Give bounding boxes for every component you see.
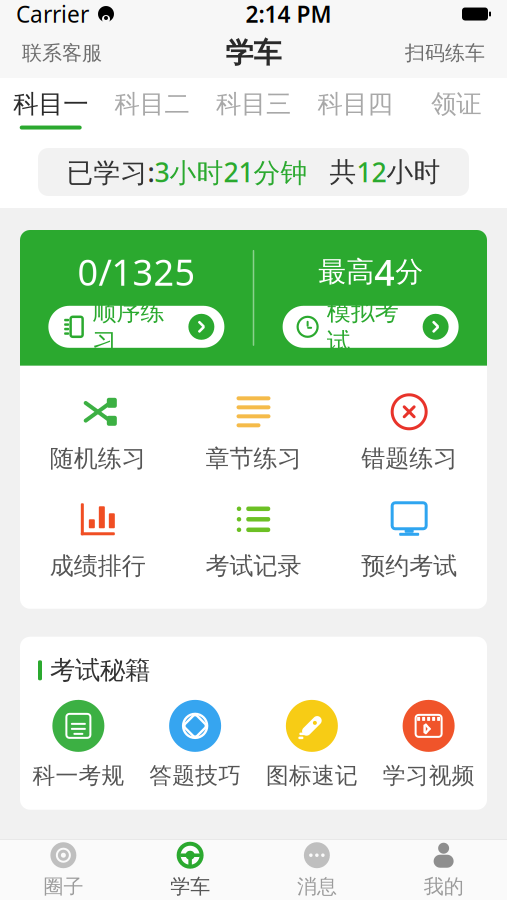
button[interactable]: 答题技巧: [137, 700, 254, 790]
button[interactable]: 考试记录: [176, 495, 331, 585]
button[interactable]: 错题练习: [331, 388, 487, 477]
staticText: 考试记录: [205, 551, 301, 581]
button[interactable]: 预约考试: [331, 495, 487, 585]
staticText: 学习视频: [383, 762, 475, 790]
staticText: 科目一: [13, 88, 88, 119]
button[interactable]: 圈子: [0, 835, 127, 900]
staticText: 成绩排行: [50, 551, 146, 581]
staticText: 学车: [170, 874, 210, 899]
staticText: 科一考规: [32, 762, 124, 790]
button[interactable]: 章节练习: [176, 388, 331, 477]
button[interactable]: 扫码练车: [393, 33, 497, 73]
staticText: 共: [329, 156, 356, 188]
staticText: 模拟考试: [327, 297, 399, 356]
staticText: 已学习:: [66, 154, 154, 190]
staticText: 科目二: [115, 88, 190, 119]
button[interactable]: 领证: [406, 76, 507, 137]
button[interactable]: 成绩排行: [20, 495, 176, 585]
button[interactable]: 顺序练习: [48, 306, 224, 348]
staticText: 章节练习: [205, 444, 301, 473]
staticText: 科目三: [216, 88, 291, 119]
button[interactable]: 消息: [253, 835, 380, 900]
button[interactable]: 学车: [127, 835, 254, 900]
staticText: 考试秘籍: [50, 655, 150, 686]
button[interactable]: 图标速记: [253, 700, 370, 790]
button[interactable]: 科目三: [203, 76, 304, 137]
staticText: 学车: [225, 36, 281, 70]
staticText: 顺序练习: [92, 297, 164, 356]
button[interactable]: 模拟考试: [283, 306, 459, 348]
button[interactable]: 科目二: [101, 76, 203, 137]
staticText: 3小时21分钟: [154, 154, 307, 190]
staticText: 消息: [297, 874, 337, 899]
staticText: 2:14 PM: [245, 0, 331, 29]
staticText: Carrier: [16, 0, 89, 29]
staticText: 分: [395, 255, 423, 289]
staticText: 图标速记: [266, 762, 358, 790]
staticText: 圈子: [43, 874, 83, 899]
button[interactable]: 科一考规: [20, 700, 137, 790]
button[interactable]: 我的: [380, 835, 507, 900]
staticText: 4: [374, 248, 395, 296]
staticText: 随机练习: [50, 444, 146, 473]
button[interactable]: 联系客服: [10, 33, 114, 73]
staticText: 我的: [424, 874, 464, 899]
staticText: 预约考试: [361, 551, 457, 581]
button[interactable]: 随机练习: [20, 388, 176, 477]
button[interactable]: 学习视频: [370, 700, 487, 790]
staticText: 扫码练车: [405, 41, 485, 65]
staticText: 小时: [386, 156, 440, 188]
staticText: 科目四: [317, 88, 392, 119]
staticText: 最高: [318, 255, 374, 289]
staticText: 12: [356, 154, 386, 190]
button[interactable]: 科目四: [304, 76, 406, 137]
staticText: 0/1325: [77, 248, 195, 296]
staticText: 错题练习: [361, 444, 457, 473]
staticText: 领证: [431, 88, 481, 119]
button[interactable]: 科目一: [0, 76, 101, 137]
staticText: 联系客服: [22, 41, 102, 65]
staticText: 答题技巧: [149, 762, 241, 790]
